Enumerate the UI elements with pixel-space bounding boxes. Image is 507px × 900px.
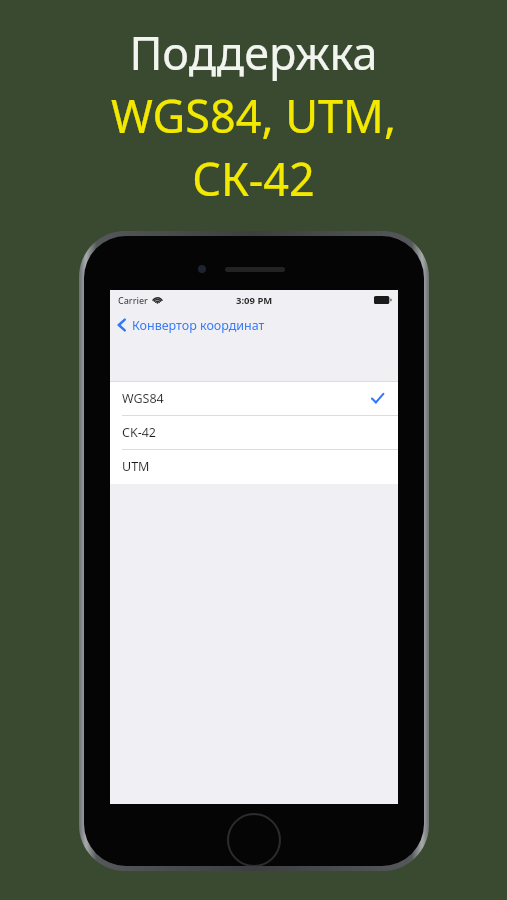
staticText: WGS84, UTM, bbox=[111, 85, 396, 146]
button[interactable]: UTM bbox=[110, 450, 398, 483]
button[interactable]: WGS84 bbox=[110, 382, 398, 415]
staticText: WGS84 bbox=[122, 390, 164, 407]
staticText: СК-42 bbox=[192, 148, 315, 209]
staticText: Конвертор координат bbox=[132, 317, 265, 334]
staticText: CK-42 bbox=[122, 424, 156, 441]
staticText: Поддержка bbox=[129, 22, 378, 83]
staticText: Carrier bbox=[118, 294, 148, 306]
button[interactable]: Конвертор координат bbox=[110, 310, 398, 340]
button[interactable]: Home bbox=[227, 813, 281, 866]
staticText: 3:09 PM bbox=[236, 294, 273, 307]
staticText: UTM bbox=[122, 458, 150, 475]
button[interactable]: CK-42 bbox=[110, 416, 398, 449]
